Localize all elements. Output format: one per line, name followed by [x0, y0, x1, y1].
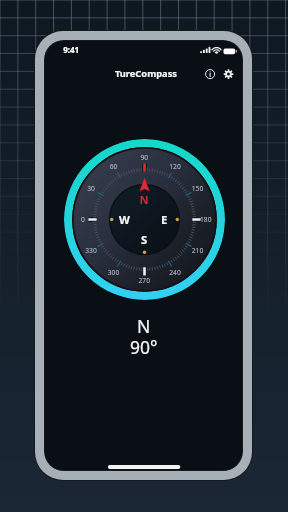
button[interactable]: Settings	[218, 64, 239, 85]
button[interactable]: Compass dial	[64, 139, 225, 300]
button[interactable]: Info	[200, 64, 221, 85]
